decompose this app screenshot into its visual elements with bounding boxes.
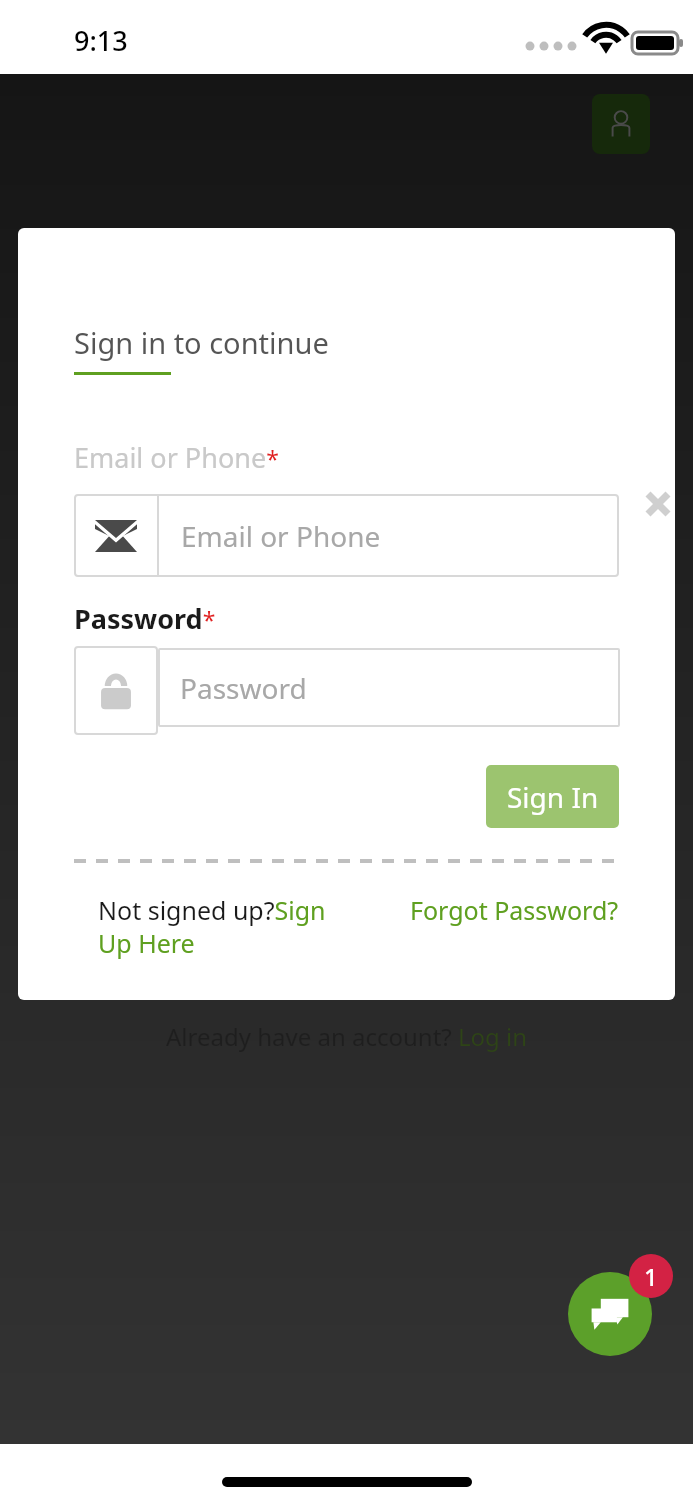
- staticText: Forgot Password?: [410, 893, 619, 927]
- button[interactable]: Chat: [568, 1272, 652, 1356]
- staticText: Email or Phone*: [74, 439, 279, 476]
- staticText: Already have an account? Log in: [166, 1020, 528, 1053]
- button[interactable]: Account: [592, 94, 650, 154]
- staticText: Email or Phone: [181, 517, 381, 555]
- staticText: Not signed up?Sign Up Here: [98, 893, 358, 960]
- staticText: Password*: [74, 600, 216, 637]
- button[interactable]: Sign In: [486, 765, 619, 828]
- staticText: Sign In: [507, 778, 599, 816]
- staticText: 9:13: [74, 22, 128, 59]
- button[interactable]: Email or Phone: [74, 494, 619, 577]
- button[interactable]: Forgot Password?: [410, 893, 619, 927]
- button[interactable]: Not signed up?Sign Up Here: [98, 893, 358, 960]
- staticText: 1: [644, 1260, 658, 1293]
- button[interactable]: Password: [158, 648, 620, 727]
- button[interactable]: Close: [630, 476, 675, 532]
- staticText: Password: [180, 669, 307, 707]
- staticText: Sign in to continue: [74, 323, 329, 362]
